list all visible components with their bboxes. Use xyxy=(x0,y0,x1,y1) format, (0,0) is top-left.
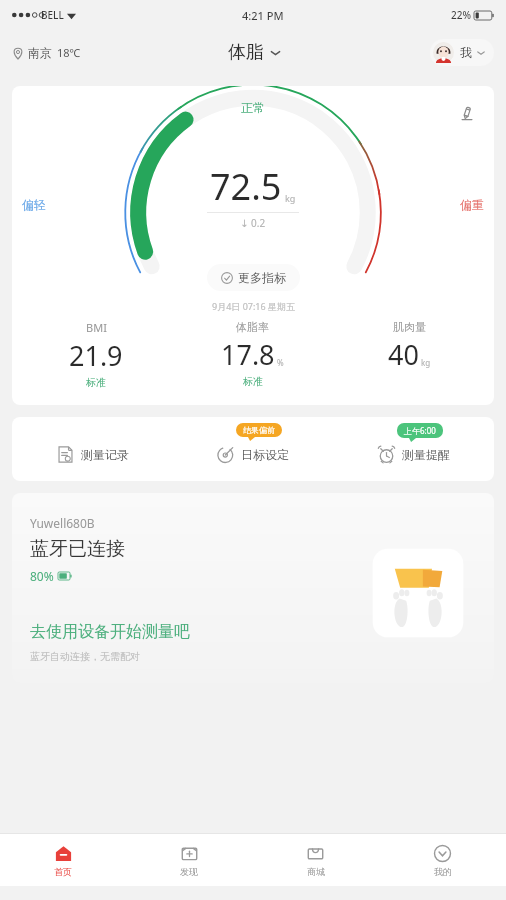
button[interactable]: 更多指标 xyxy=(207,264,300,291)
staticText: 4:21 PM xyxy=(242,8,284,23)
staticText: 80% xyxy=(30,568,54,584)
staticText: 蓝牙自动连接，无需配对 xyxy=(30,650,140,663)
button[interactable]: 发现 xyxy=(126,834,252,886)
staticText: kg xyxy=(421,357,431,368)
button[interactable]: 体脂率 xyxy=(174,318,331,390)
button[interactable]: BMI xyxy=(18,318,174,391)
staticText: BELL xyxy=(41,8,64,22)
staticText: 南京 xyxy=(28,45,52,60)
staticText: 日标设定 xyxy=(241,447,289,462)
button[interactable]: 测量记录 xyxy=(12,417,172,481)
staticText: 我 xyxy=(460,45,472,60)
staticText: 22% xyxy=(451,8,471,22)
staticText: Yuwell680B xyxy=(30,515,95,531)
staticText: 17.8 xyxy=(221,336,275,373)
staticText: 标准 xyxy=(243,375,263,388)
button[interactable]: Edit xyxy=(454,100,480,126)
staticText: ↓ 0.2 xyxy=(240,216,266,230)
staticText: 偏轻 xyxy=(22,197,46,212)
button[interactable]: 日标设定 xyxy=(172,417,333,481)
staticText: 结果偏前 xyxy=(243,425,275,435)
button[interactable]: 肌肉量 xyxy=(331,318,488,389)
staticText: 18℃ xyxy=(57,45,81,60)
button[interactable]: 商城 xyxy=(252,834,379,886)
staticText: 发现 xyxy=(180,866,198,877)
staticText: 更多指标 xyxy=(238,270,286,285)
button[interactable]: 首页 xyxy=(0,834,126,886)
staticText: 首页 xyxy=(54,866,72,877)
staticText: % xyxy=(277,357,284,368)
staticText: 商城 xyxy=(307,866,325,877)
staticText: 正常 xyxy=(241,100,265,115)
staticText: kg xyxy=(285,192,296,204)
staticText: 9月4日 07:16 星期五 xyxy=(212,300,295,312)
staticText: 蓝牙已连接 xyxy=(30,537,125,561)
button[interactable]: Yuwell680B xyxy=(12,493,494,683)
button[interactable]: 测量提醒 xyxy=(333,417,494,481)
staticText: 体脂率 xyxy=(236,320,269,334)
staticText: 偏重 xyxy=(460,197,484,212)
button[interactable]: 体脂 xyxy=(222,37,288,68)
button[interactable]: 我 xyxy=(430,39,494,66)
staticText: 肌肉量 xyxy=(393,320,426,334)
staticText: 我的 xyxy=(434,866,452,877)
staticText: 体脂 xyxy=(228,41,264,64)
staticText: 测量提醒 xyxy=(402,447,450,462)
button[interactable]: 南京 xyxy=(12,41,81,64)
staticText: 测量记录 xyxy=(81,447,129,462)
button[interactable]: 去使用设备开始测量吧 xyxy=(30,622,190,642)
button[interactable]: 我的 xyxy=(379,834,506,886)
staticText: 上午6:00 xyxy=(404,425,436,436)
staticText: 40 xyxy=(388,336,419,373)
staticText: 21.9 xyxy=(69,337,123,374)
staticText: 72.5 xyxy=(210,162,282,211)
staticText: 标准 xyxy=(86,376,106,389)
staticText: BMI xyxy=(86,320,107,335)
